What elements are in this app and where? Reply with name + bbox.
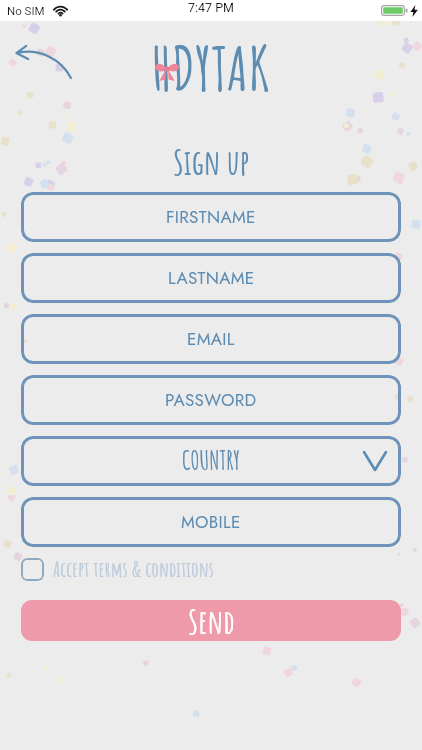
staticText: HDYTAK — [152, 30, 271, 106]
button[interactable]: Back — [12, 42, 74, 80]
staticText: FIRSTNAME — [166, 205, 256, 230]
button[interactable]: Send — [21, 600, 401, 641]
staticText: Send — [188, 600, 235, 641]
staticText: PASSWORD — [165, 388, 257, 413]
staticText: COUNTRY — [182, 445, 241, 477]
button[interactable]: COUNTRY — [21, 436, 401, 486]
staticText: LASTNAME — [168, 266, 255, 291]
staticText: Accept terms & conditions — [53, 556, 214, 582]
button[interactable]: Accept terms & conditions — [21, 556, 214, 582]
staticText: MOBILE — [181, 510, 241, 535]
button[interactable]: PASSWORD — [21, 375, 401, 425]
staticText: No SIM — [7, 4, 45, 17]
button[interactable]: FIRSTNAME — [21, 192, 401, 242]
button[interactable]: MOBILE — [21, 497, 401, 547]
button[interactable]: LASTNAME — [21, 253, 401, 303]
staticText: Sign up — [173, 139, 250, 183]
staticText: 7:47 PM — [188, 0, 235, 15]
staticText: EMAIL — [187, 327, 235, 352]
button[interactable]: EMAIL — [21, 314, 401, 364]
